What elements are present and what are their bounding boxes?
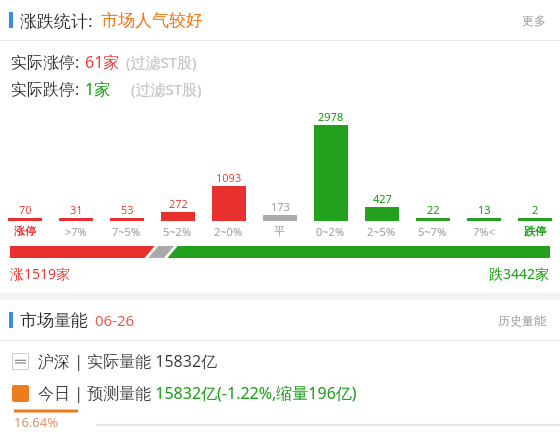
staticText: 2 xyxy=(532,202,539,217)
staticText: 5~7% xyxy=(418,224,447,239)
button[interactable]: 今日 | 预测量能 15832亿(-1.22%,缩量196亿) xyxy=(0,379,560,407)
staticText: 沪深 | 实际量能 15832亿 xyxy=(38,350,218,372)
staticText: 实际涨停: xyxy=(11,51,80,73)
staticText: 173 xyxy=(271,199,290,214)
staticText: 2~5% xyxy=(367,224,396,239)
button[interactable]: 沪深 | 实际量能 15832亿 xyxy=(0,347,560,375)
staticText: 7%< xyxy=(473,224,495,239)
staticText: 7~5% xyxy=(112,224,141,239)
staticText: 2~0% xyxy=(214,224,243,239)
staticText: 今日 | 预测量能 15832亿(-1.22%,缩量196亿) xyxy=(38,382,357,404)
staticText: 5~2% xyxy=(163,224,192,239)
staticText: >7% xyxy=(65,224,87,239)
staticText: 70 xyxy=(19,202,32,217)
staticText: 市场量能 xyxy=(20,310,88,331)
staticText: 13 xyxy=(478,202,491,217)
staticText: (过滤ST股) xyxy=(131,79,202,99)
staticText: 更多 xyxy=(522,13,546,28)
staticText: 06-26 xyxy=(95,310,135,330)
staticText: 1家 xyxy=(85,78,111,100)
staticText: 跌3442家 xyxy=(489,264,550,283)
button[interactable] xyxy=(10,246,550,258)
staticText: 31 xyxy=(70,202,83,217)
staticText: 平 xyxy=(274,224,285,238)
staticText: 61家 xyxy=(85,51,120,73)
button[interactable]: 市场量能 xyxy=(0,300,560,340)
staticText: 涨1519家 xyxy=(10,264,71,283)
staticText: 22 xyxy=(427,202,440,217)
staticText: 实际跌停: xyxy=(11,78,80,100)
staticText: 跌停 xyxy=(524,224,546,238)
staticText: 427 xyxy=(373,191,392,206)
button[interactable]: 涨跌统计: xyxy=(0,0,560,40)
staticText: 涨停 xyxy=(14,224,36,238)
staticText: 1093 xyxy=(216,170,242,185)
staticText: 53 xyxy=(121,202,134,217)
staticText: 涨跌统计: xyxy=(20,9,93,32)
staticText: (过滤ST股) xyxy=(126,52,197,72)
staticText: 市场人气较好 xyxy=(101,10,203,31)
staticText: 0~2% xyxy=(316,224,345,239)
staticText: 272 xyxy=(169,196,188,211)
staticText: 历史量能 xyxy=(498,313,546,328)
staticText: 2978 xyxy=(318,109,344,124)
staticText: 16.64% xyxy=(14,413,59,431)
